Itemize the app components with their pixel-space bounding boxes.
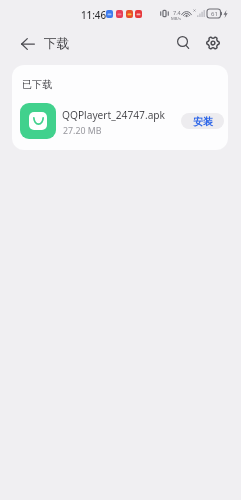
staticText: 61 xyxy=(211,10,218,18)
button[interactable]: Settings xyxy=(201,31,225,55)
staticText: QQPlayert_24747.apk xyxy=(62,108,166,122)
button[interactable]: Back xyxy=(16,32,40,56)
staticText: MB/s xyxy=(171,16,182,22)
staticText: 27.20 MB xyxy=(63,125,102,137)
button[interactable]: 安装 xyxy=(181,113,224,129)
button[interactable]: Search xyxy=(171,30,195,54)
staticText: 11:46 xyxy=(81,9,107,22)
staticText: 7.4 xyxy=(173,9,181,16)
staticText: 已下载 xyxy=(22,78,52,91)
staticText: 下载 xyxy=(44,36,70,52)
button[interactable]: QQPlayert_24747.apk xyxy=(12,97,228,142)
staticText: 安装 xyxy=(193,115,213,128)
